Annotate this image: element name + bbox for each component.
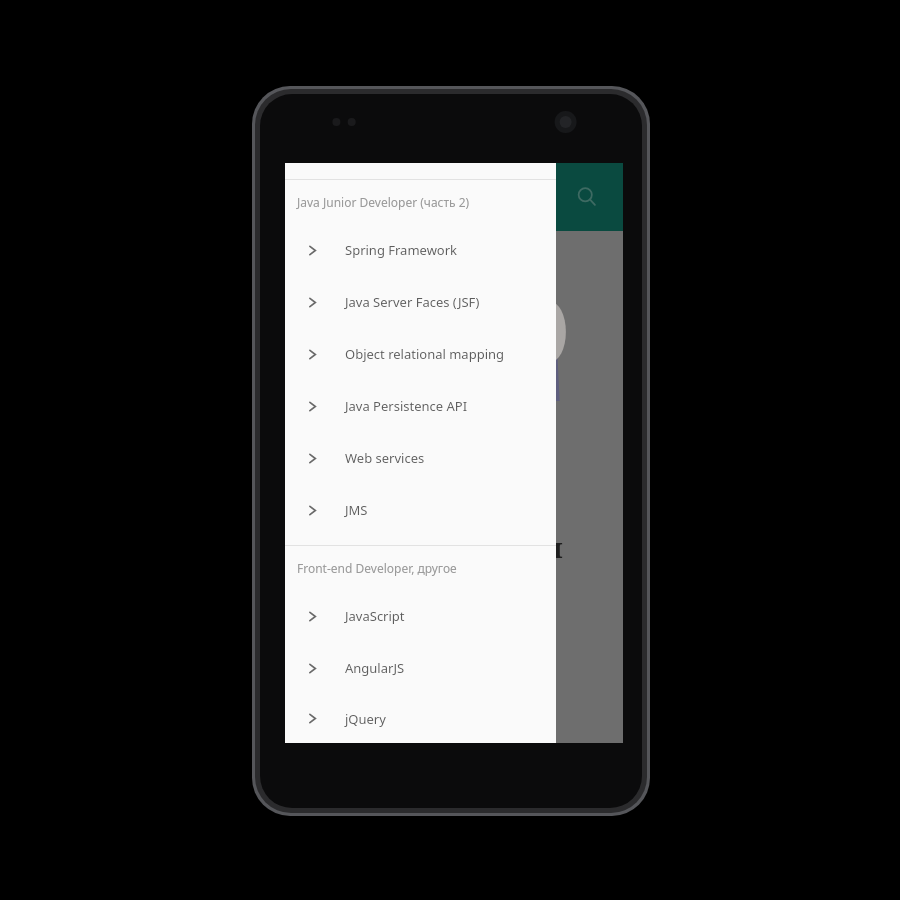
- staticText: Spring Framework: [345, 241, 458, 259]
- button[interactable]: AngularJS: [285, 642, 556, 694]
- staticText: Java Junior Developer (часть 2): [297, 194, 470, 210]
- staticText: Java Server Faces (JSF): [345, 293, 480, 311]
- staticText: Web services: [345, 449, 425, 467]
- button[interactable]: JMS: [285, 484, 556, 536]
- button[interactable]: Spring Framework: [285, 224, 556, 276]
- staticText: JMS: [345, 501, 368, 519]
- staticText: Java Persistence API: [345, 397, 468, 415]
- staticText: AngularJS: [345, 659, 405, 677]
- staticText: Object relational mapping: [345, 345, 505, 363]
- button[interactable]: Object relational mapping: [285, 328, 556, 380]
- button[interactable]: jQuery: [285, 694, 556, 743]
- staticText: ты: [524, 529, 563, 566]
- button[interactable]: Java Persistence API: [285, 380, 556, 432]
- staticText: Front-end Developer, другое: [297, 560, 457, 576]
- staticText: JavaScript: [345, 607, 405, 625]
- button[interactable]: JavaScript: [285, 590, 556, 642]
- staticText: jQuery: [345, 710, 386, 728]
- button[interactable]: Java Server Faces (JSF): [285, 276, 556, 328]
- button[interactable]: Search: [567, 177, 607, 217]
- button[interactable]: Web services: [285, 432, 556, 484]
